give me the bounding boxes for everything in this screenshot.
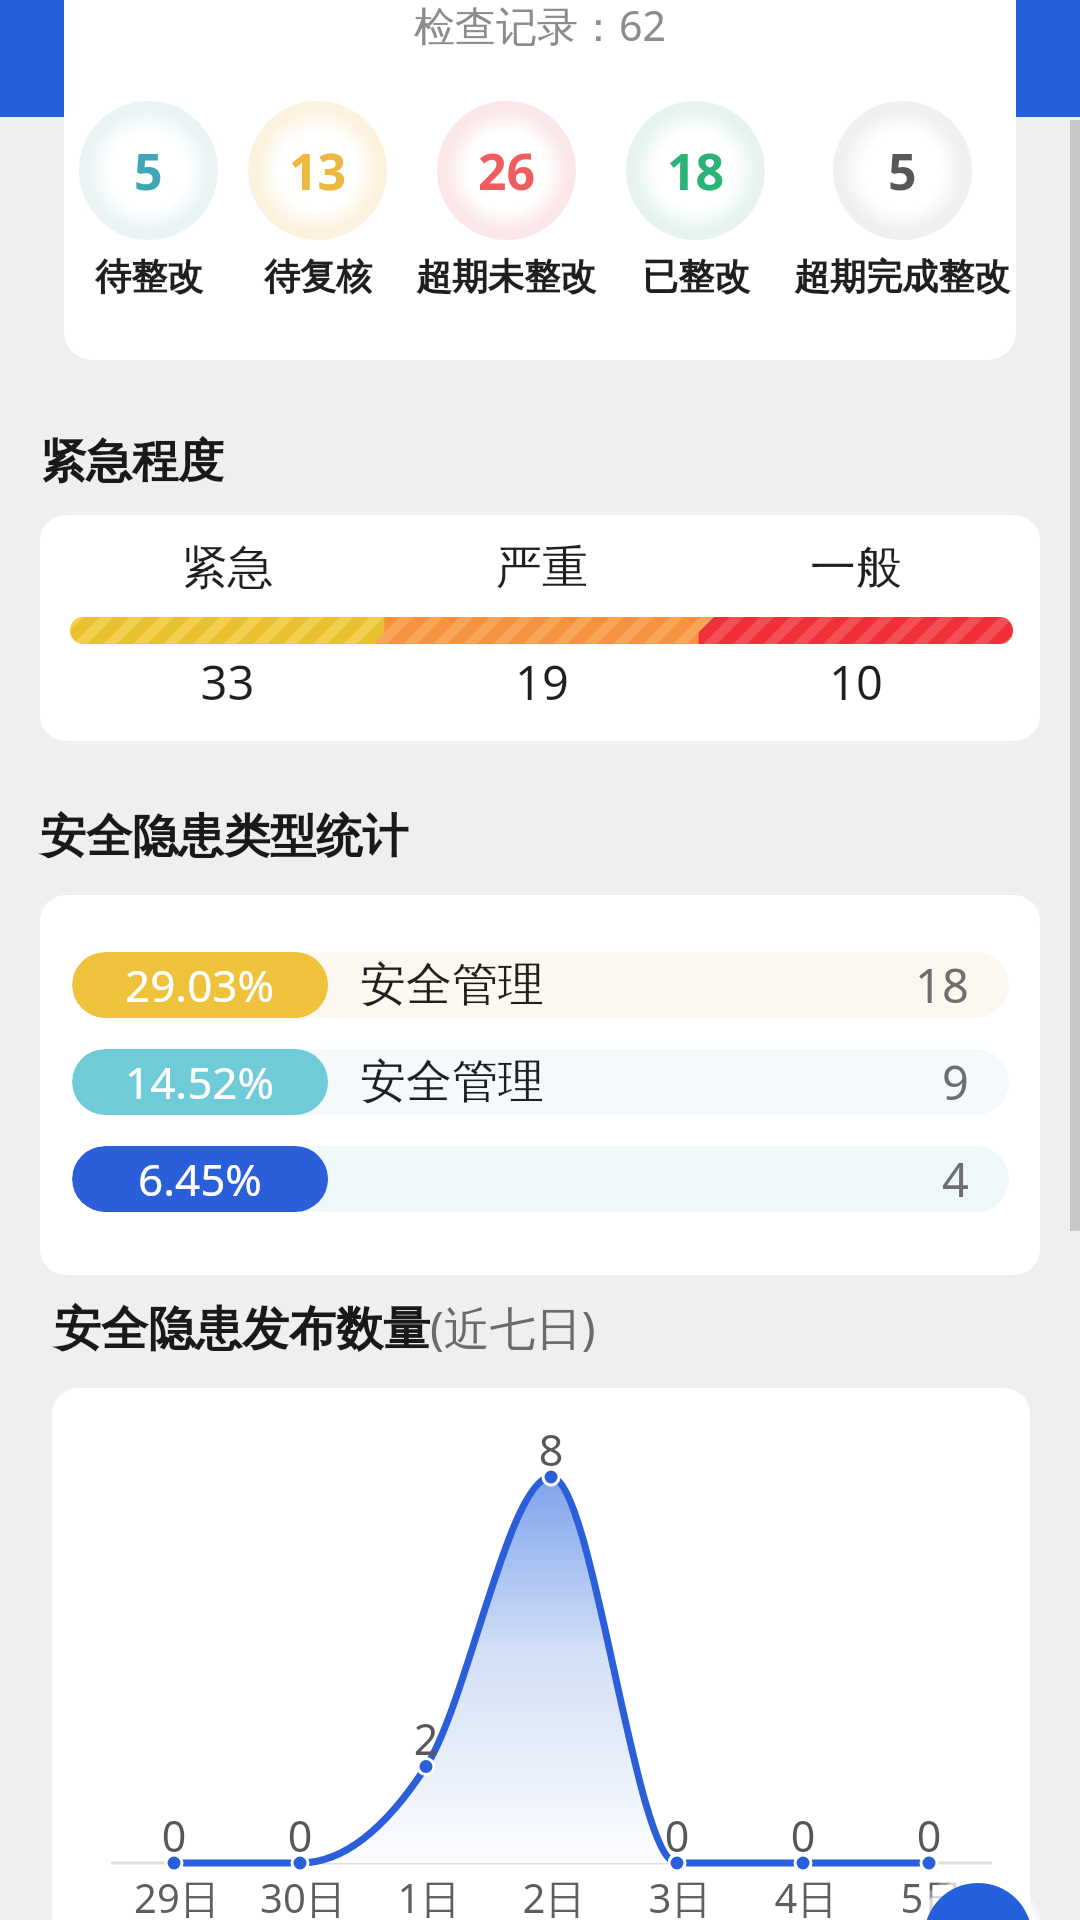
staticText: 安全管理 (360, 1053, 942, 1111)
staticText: 5 (134, 137, 163, 205)
staticText: 5 (888, 137, 917, 205)
staticText: 紧急 (70, 539, 385, 597)
staticText: 待整改 (95, 254, 203, 299)
staticText: 5日 (862, 1870, 1002, 1920)
staticText: 4日 (736, 1870, 876, 1920)
staticText: 紧急程度 (40, 433, 224, 491)
staticText: 已整改 (642, 254, 750, 299)
staticText: 3日 (610, 1870, 750, 1920)
staticText: 2日 (484, 1870, 624, 1920)
button[interactable]: 29.03% (72, 952, 1009, 1018)
staticText: 19 (385, 650, 699, 714)
staticText: 18 (667, 137, 725, 205)
staticText: 14.52% (125, 1052, 275, 1112)
button[interactable]: 6.45% (72, 1146, 1009, 1212)
staticText: 29.03% (125, 955, 275, 1015)
staticText: 26 (478, 137, 536, 205)
staticText: 29日 (107, 1870, 247, 1920)
staticText: 待复核 (264, 254, 372, 299)
staticText: 1日 (359, 1870, 499, 1920)
staticText: 6.45% (138, 1149, 262, 1209)
button[interactable]: Add record (924, 1883, 1032, 1920)
button[interactable]: 14.52% (72, 1049, 1009, 1115)
staticText: 安全隐患类型统计 (40, 808, 408, 866)
staticText: 33 (70, 650, 385, 714)
staticText: 超期完成整改 (794, 254, 1010, 299)
staticText: 超期未整改 (416, 254, 596, 299)
staticText: 8 (501, 1420, 601, 1479)
staticText: 0 (879, 1806, 979, 1865)
staticText: 检查记录：62 (64, 0, 1016, 53)
staticText: 18 (915, 953, 969, 1017)
staticText: 0 (753, 1806, 853, 1865)
staticText: 一般 (699, 539, 1013, 597)
staticText: 严重 (385, 539, 699, 597)
staticText: 13 (289, 137, 347, 205)
staticText: 0 (250, 1806, 350, 1865)
staticText: 安全隐患发布数量 (54, 1300, 430, 1359)
staticText: (近七日) (430, 1296, 596, 1359)
staticText: 9 (942, 1050, 969, 1114)
staticText: 2 (376, 1709, 476, 1768)
staticText: 10 (699, 650, 1013, 714)
staticText: 30日 (233, 1870, 373, 1920)
staticText: 安全管理 (360, 956, 915, 1014)
staticText: 0 (124, 1806, 224, 1865)
staticText: 0 (627, 1806, 727, 1865)
staticText: 4 (942, 1147, 969, 1211)
